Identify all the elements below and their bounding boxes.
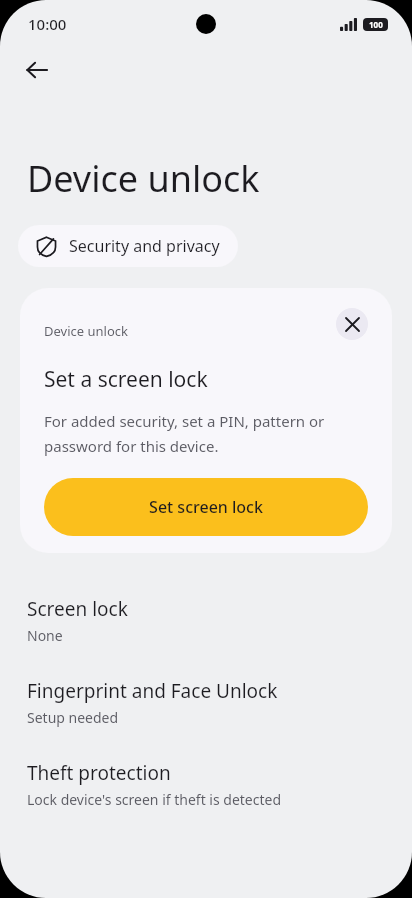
staticText: Setup needed: [27, 708, 119, 727]
staticText: For added security, set a PIN, pattern o…: [44, 411, 368, 456]
button[interactable]: Close: [336, 308, 368, 340]
staticText: 10:00: [28, 14, 67, 34]
staticText: None: [27, 626, 63, 645]
staticText: Fingerprint and Face Unlock: [27, 678, 278, 704]
button[interactable]: Fingerprint and Face Unlock: [0, 678, 412, 727]
staticText: Device unlock: [44, 322, 128, 340]
staticText: Security and privacy: [69, 235, 220, 257]
staticText: Theft protection: [27, 760, 171, 786]
staticText: Set a screen lock: [44, 365, 208, 394]
button[interactable]: Security and privacy: [18, 225, 238, 267]
button[interactable]: Screen lock: [0, 596, 412, 645]
button[interactable]: Back: [13, 48, 61, 92]
staticText: 100: [369, 19, 383, 30]
staticText: Device unlock: [27, 154, 260, 203]
button[interactable]: Theft protection: [0, 760, 412, 809]
staticText: Lock device's screen if theft is detecte…: [27, 790, 282, 809]
staticText: Set screen lock: [149, 496, 263, 518]
staticText: Screen lock: [27, 596, 128, 622]
button[interactable]: Set screen lock: [44, 478, 368, 536]
